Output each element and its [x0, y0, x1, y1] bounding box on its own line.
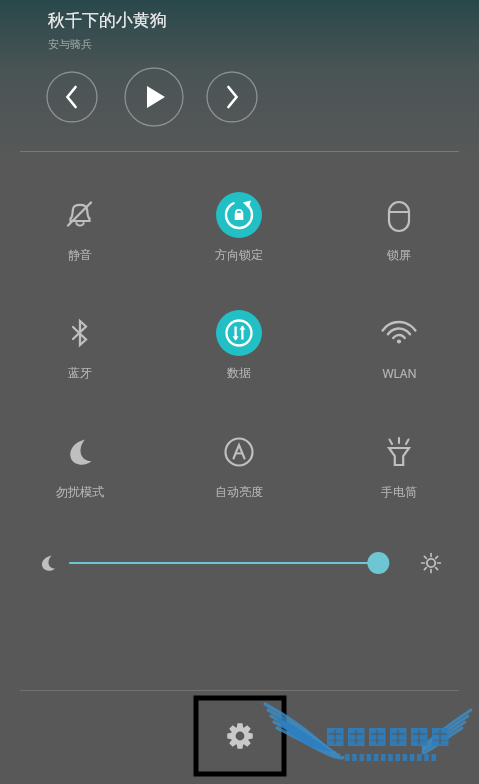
staticText: 方向锁定 [215, 247, 263, 262]
button[interactable]: 勿扰模式 [0, 427, 159, 501]
staticText: 自动亮度 [215, 484, 263, 499]
button[interactable]: 手电筒 [319, 427, 479, 501]
button[interactable]: 锁屏 [319, 190, 479, 264]
button[interactable]: 数据 [159, 308, 319, 382]
button[interactable]: Play [124, 67, 184, 127]
staticText: 手电筒 [381, 484, 417, 499]
staticText: 秋千下的小黄狗 [48, 10, 167, 31]
staticText: 蓝牙 [68, 365, 92, 380]
button[interactable]: 蓝牙 [0, 308, 159, 382]
staticText: 勿扰模式 [56, 484, 104, 499]
button[interactable]: WLAN [319, 308, 479, 383]
staticText: 锁屏 [387, 247, 411, 262]
button[interactable]: 静音 [0, 190, 159, 264]
button[interactable]: Previous [46, 71, 98, 123]
staticText: 静音 [68, 247, 92, 262]
button[interactable]: Settings [196, 698, 284, 774]
button[interactable]: 方向锁定 [159, 190, 319, 264]
staticText: 安与骑兵 [48, 37, 92, 51]
staticText: WLAN [382, 365, 417, 381]
staticText: 数据 [227, 365, 251, 380]
button[interactable]: 自动亮度 [159, 427, 319, 501]
button[interactable]: Next [206, 71, 258, 123]
button[interactable] [0, 543, 479, 583]
